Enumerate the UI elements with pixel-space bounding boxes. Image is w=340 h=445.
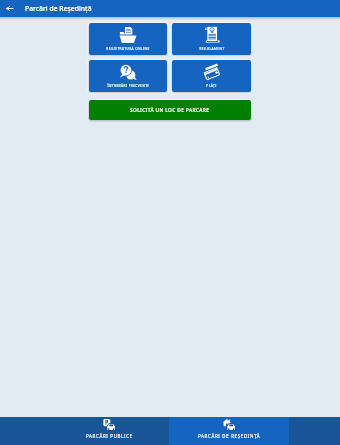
staticText: Parcări de Reședință (25, 4, 92, 13)
staticText: PARCĂRI PUBLICE (86, 433, 133, 439)
button[interactable]: REGULAMENT (172, 23, 251, 55)
button[interactable]: ÎNTREBĂRI FRECVENTE (89, 60, 167, 92)
staticText: PLĂȚI (206, 84, 217, 88)
button[interactable]: PARCĂRI DE REȘEDINȚĂ (169, 417, 289, 445)
button[interactable]: SOLICITĂ UN LOC DE PARCARE (89, 100, 251, 120)
button[interactable]: PLĂȚI (172, 60, 251, 92)
button[interactable]: PARCĂRI PUBLICE (49, 417, 169, 445)
button[interactable]: REGISTRATURĂ ONLINE (89, 23, 167, 55)
staticText: PARCĂRI DE REȘEDINȚĂ (198, 433, 261, 439)
staticText: ÎNTREBĂRI FRECVENTE (107, 84, 150, 88)
staticText: SOLICITĂ UN LOC DE PARCARE (130, 107, 210, 114)
button[interactable]: Back (0, 0, 19, 17)
staticText: REGULAMENT (199, 47, 225, 51)
staticText: REGISTRATURĂ ONLINE (106, 47, 150, 51)
